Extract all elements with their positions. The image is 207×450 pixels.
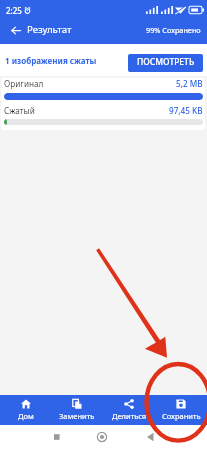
button[interactable]: Дом	[0, 395, 51, 425]
staticText: 2:25	[6, 5, 22, 16]
button[interactable]: Заменить	[51, 395, 103, 425]
staticText: Сохранить	[162, 411, 201, 421]
staticText: 99% Сохранено	[146, 25, 201, 35]
staticText: Оригинал	[4, 78, 44, 89]
staticText: Сжатый	[4, 105, 35, 116]
staticText: Результат	[27, 23, 72, 36]
staticText: 5,2 MB	[176, 78, 203, 89]
staticText: Дом	[18, 411, 34, 421]
staticText: 97,45 KB	[169, 105, 203, 116]
button[interactable]: Back	[0, 19, 76, 40]
staticText: Заменить	[59, 411, 95, 421]
staticText: ПОСМОТРЕТЬ	[137, 56, 195, 68]
button[interactable]: Делиться	[103, 395, 155, 425]
button[interactable]: Сохранить	[155, 395, 207, 425]
button[interactable]: ПОСМОТРЕТЬ	[128, 54, 203, 72]
other: Back	[11, 25, 21, 34]
staticText: 1 изображения сжаты	[5, 55, 97, 66]
staticText: Делиться	[112, 411, 147, 421]
